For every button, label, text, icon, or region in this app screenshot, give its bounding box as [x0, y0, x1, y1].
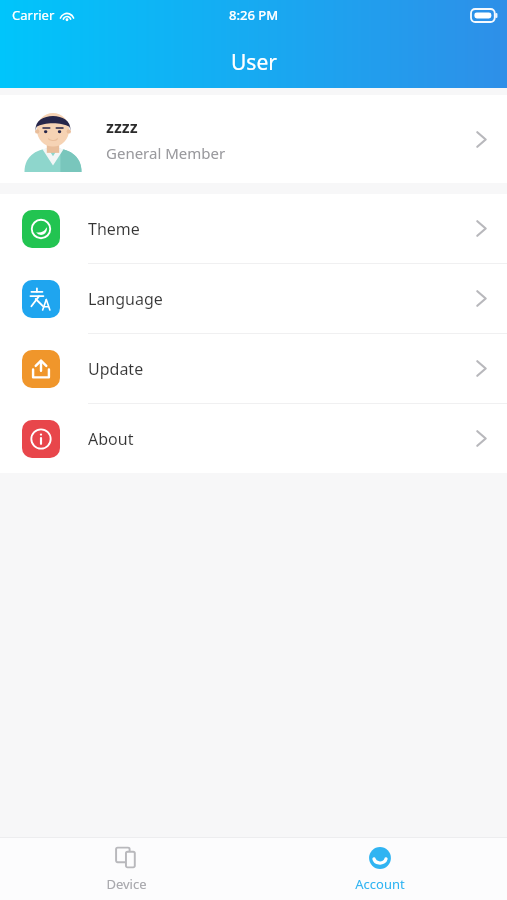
staticText: General Member: [106, 143, 226, 163]
staticText: Device: [106, 875, 147, 893]
staticText: Account: [355, 875, 405, 893]
button[interactable]: Update: [0, 334, 507, 403]
button[interactable]: Device: [0, 838, 253, 900]
button[interactable]: About: [0, 404, 507, 473]
staticText: Carrier: [12, 6, 55, 24]
button[interactable]: Theme: [0, 194, 507, 263]
button[interactable]: Language: [0, 264, 507, 333]
button[interactable]: zzzz: [0, 95, 507, 183]
staticText: Theme: [88, 218, 476, 240]
staticText: zzzz: [106, 116, 138, 138]
staticText: User: [231, 48, 277, 77]
staticText: About: [88, 428, 476, 450]
staticText: Update: [88, 358, 476, 380]
button[interactable]: Account: [253, 838, 507, 900]
staticText: Language: [88, 288, 476, 310]
staticText: 8:26 PM: [229, 6, 279, 24]
